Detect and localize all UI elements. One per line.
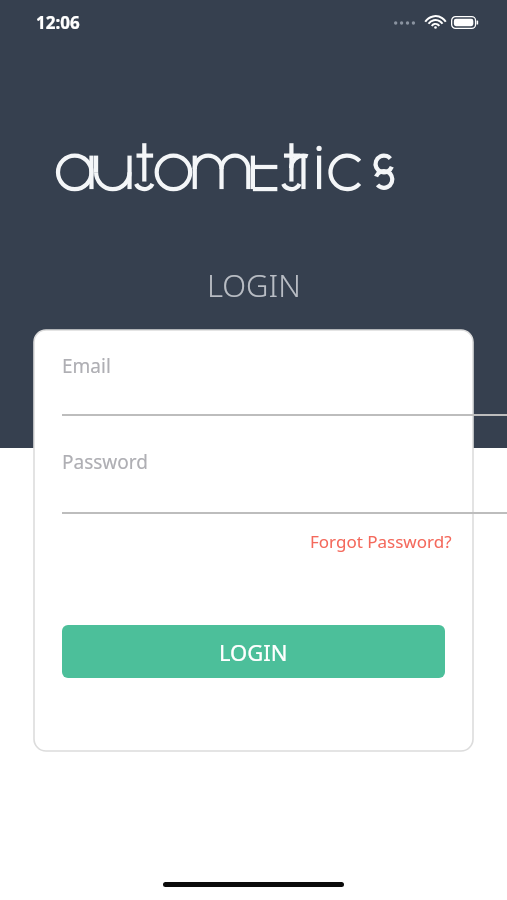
staticText: LOGIN [219, 637, 288, 667]
button[interactable]: Forgot Password? [262, 524, 452, 558]
button[interactable]: LOGIN [62, 625, 445, 678]
button[interactable]: Password [34, 432, 473, 512]
staticText: 12:06 [36, 11, 80, 34]
staticText: Forgot Password? [310, 530, 452, 553]
staticText: Password [62, 449, 148, 475]
button[interactable]: Email [34, 336, 473, 416]
staticText: LOGIN [207, 264, 301, 306]
staticText: Email [62, 353, 111, 379]
